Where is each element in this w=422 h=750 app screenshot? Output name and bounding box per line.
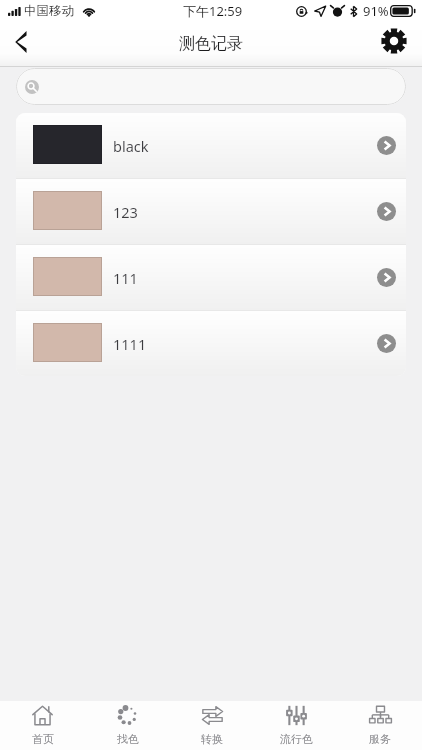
button[interactable]: Back bbox=[0, 22, 44, 66]
button[interactable]: 首页 bbox=[0, 701, 85, 750]
staticText: black bbox=[113, 136, 149, 156]
button[interactable]: 服务 bbox=[338, 701, 422, 750]
staticText: 1111 bbox=[113, 334, 147, 354]
staticText: 111 bbox=[113, 268, 138, 288]
button[interactable]: 123 bbox=[16, 179, 406, 244]
button[interactable]: 转换 bbox=[170, 701, 254, 750]
staticText: 91% bbox=[363, 2, 389, 20]
button[interactable]: Settings bbox=[370, 22, 422, 66]
staticText: 测色记录 bbox=[179, 34, 243, 54]
staticText: 找色 bbox=[117, 732, 139, 746]
staticText: 转换 bbox=[201, 732, 223, 746]
staticText: 中国移动 bbox=[24, 3, 74, 19]
staticText: 123 bbox=[113, 202, 138, 222]
button[interactable]: 1111 bbox=[16, 311, 406, 376]
staticText: 首页 bbox=[32, 732, 54, 746]
button[interactable]: black bbox=[16, 113, 406, 178]
staticText: 流行色 bbox=[280, 732, 313, 746]
button[interactable]: 111 bbox=[16, 245, 406, 310]
button[interactable]: 流行色 bbox=[254, 701, 338, 750]
button[interactable]: 找色 bbox=[85, 701, 170, 750]
button[interactable] bbox=[16, 68, 406, 105]
staticText: 服务 bbox=[369, 732, 391, 746]
staticText: 下午12:59 bbox=[183, 2, 243, 20]
